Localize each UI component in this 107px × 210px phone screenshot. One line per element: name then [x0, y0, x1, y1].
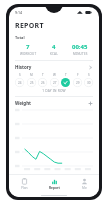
button[interactable]: T: [61, 73, 70, 87]
staticText: 30: [87, 81, 91, 85]
button[interactable]: 4: [41, 43, 67, 56]
staticText: F: [77, 73, 79, 77]
button[interactable]: Plan: [9, 175, 39, 193]
button[interactable]: M: [27, 73, 36, 87]
staticText: 9:14: [15, 10, 22, 15]
staticText: 26: [41, 81, 45, 85]
other: Open history: [88, 65, 93, 70]
staticText: Weight: [15, 100, 32, 106]
staticText: W: [53, 73, 56, 77]
staticText: History: [15, 64, 32, 70]
staticText: WORKOUT: [20, 52, 37, 56]
staticText: 4: [52, 43, 56, 51]
staticText: T: [42, 73, 44, 77]
button[interactable]: S: [15, 73, 24, 87]
button[interactable]: Report: [39, 175, 69, 193]
button[interactable]: Me: [69, 175, 99, 193]
button[interactable]: F: [73, 73, 82, 87]
button[interactable]: History: [15, 64, 93, 70]
staticText: 24: [18, 81, 22, 85]
staticText: Report: [49, 186, 60, 190]
staticText: Total: [15, 35, 25, 40]
staticText: 00:45: [72, 43, 88, 51]
button[interactable]: 00:45: [67, 43, 93, 56]
button[interactable]: T: [38, 73, 47, 87]
staticText: Plan: [21, 186, 28, 190]
staticText: 1 DAY IN ROW: [15, 89, 93, 93]
staticText: 7: [26, 43, 30, 51]
other: Add weight: [88, 101, 93, 106]
staticText: Me: [82, 186, 87, 190]
staticText: KCAL: [50, 52, 58, 56]
staticText: REPORT: [15, 21, 44, 31]
staticText: 29: [76, 81, 80, 85]
button[interactable]: Weight: [15, 100, 93, 106]
staticText: M: [30, 73, 33, 77]
staticText: T: [65, 73, 67, 77]
staticText: 25: [30, 81, 34, 85]
button[interactable]: 7: [15, 43, 41, 56]
staticText: MINUTES: [73, 52, 88, 56]
button[interactable]: W: [50, 73, 59, 87]
staticText: 27: [53, 81, 57, 85]
button[interactable]: S: [84, 73, 93, 87]
staticText: S: [19, 73, 21, 77]
staticText: S: [88, 73, 90, 77]
